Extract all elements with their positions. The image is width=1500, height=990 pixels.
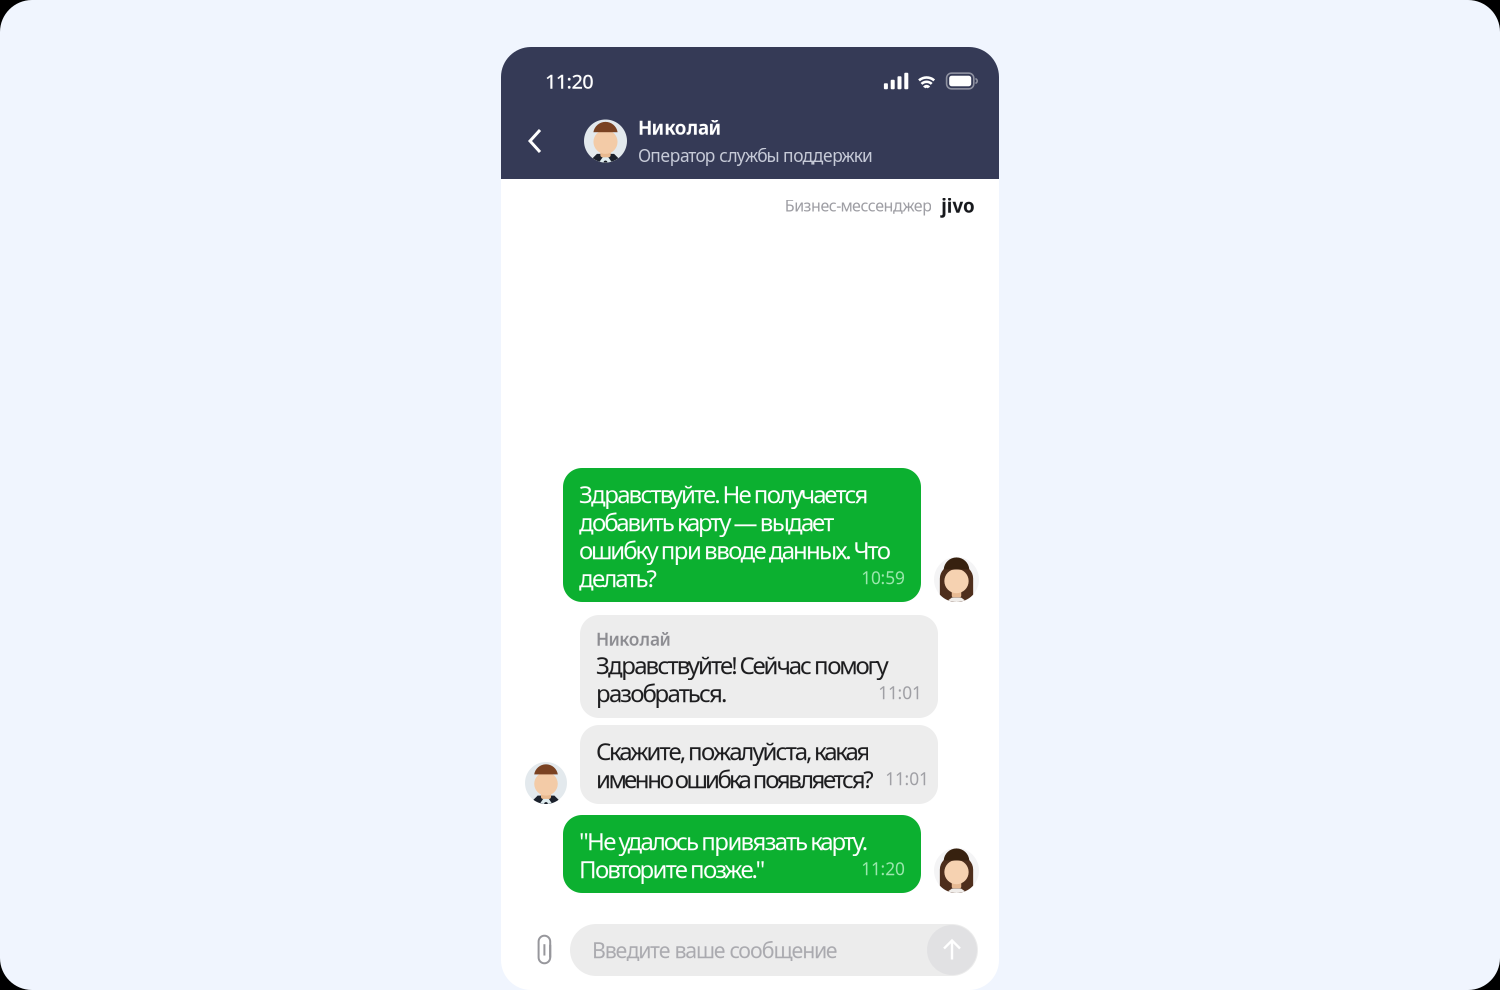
staticText: Скажите, пожалуйста, какая xyxy=(596,735,870,767)
staticText: Введите ваше сообщение xyxy=(592,936,838,964)
staticText: "Не удалось привязать карту. xyxy=(579,825,868,857)
staticText: 10:59 xyxy=(861,566,905,589)
staticText: Здравствуйте! Сейчас помогу xyxy=(596,649,889,681)
staticText: jivo xyxy=(941,193,975,218)
button[interactable]: Николай xyxy=(584,115,981,167)
staticText: 11:01 xyxy=(878,681,922,704)
staticText: Николай xyxy=(596,627,671,650)
staticText: Бизнес-мессенджер xyxy=(785,195,932,216)
staticText: Повторите позже." xyxy=(579,853,766,885)
button[interactable]: Back xyxy=(511,113,563,169)
staticText: Оператор службы поддержки xyxy=(638,144,873,167)
staticText: разобраться. xyxy=(596,677,727,709)
staticText: именно ошибка появляется? xyxy=(596,763,873,795)
staticText: Николай xyxy=(638,115,722,140)
button[interactable]: Attach file xyxy=(520,923,570,977)
staticText: 11:20 xyxy=(545,68,593,94)
staticText: 11:01 xyxy=(885,767,929,790)
button[interactable]: Send xyxy=(927,925,977,975)
staticText: делать? xyxy=(579,562,657,594)
staticText: Здравствуйте. Не получается xyxy=(579,478,869,510)
staticText: 11:20 xyxy=(861,857,905,880)
staticText: ошибку при вводе данных. Что xyxy=(579,534,891,566)
staticText: добавить карту — выдает xyxy=(579,506,834,538)
